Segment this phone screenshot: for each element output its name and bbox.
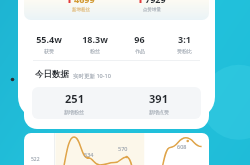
staticText: 18.3w bbox=[82, 33, 108, 45]
staticText: 今日数据 bbox=[35, 69, 69, 80]
button[interactable]: 391 bbox=[116, 91, 201, 115]
button[interactable]: Cursor bbox=[9, 76, 16, 83]
staticText: 作品 bbox=[135, 48, 145, 54]
staticText: 391 bbox=[149, 91, 168, 106]
staticText: 实时更新 10-10 bbox=[73, 72, 111, 80]
button[interactable]: 3:1 bbox=[162, 33, 207, 54]
staticText: 251 bbox=[65, 91, 84, 106]
button[interactable]: 55.4w bbox=[26, 33, 72, 54]
staticText: 赞粉比 bbox=[177, 48, 192, 54]
staticText: 粉丝 bbox=[90, 48, 100, 54]
staticText: 新增点赞 bbox=[149, 109, 169, 115]
button[interactable]: 251 bbox=[32, 91, 116, 115]
staticText: 7929 bbox=[145, 0, 166, 5]
staticText: 新增粉丝 bbox=[72, 7, 90, 13]
staticText: 点赞增量 bbox=[143, 7, 161, 13]
button[interactable]: 18.3w bbox=[72, 33, 117, 54]
button[interactable]: 96 bbox=[117, 33, 162, 54]
button[interactable]: 4699 bbox=[24, 0, 209, 20]
staticText: 4699 bbox=[74, 0, 95, 5]
staticText: 570 bbox=[118, 145, 128, 152]
staticText: 获赞 bbox=[44, 48, 54, 54]
staticText: 608 bbox=[177, 143, 187, 150]
button[interactable]: 522 bbox=[24, 133, 209, 165]
staticText: 534 bbox=[84, 151, 94, 158]
staticText: 96 bbox=[134, 33, 145, 45]
staticText: 55.4w bbox=[36, 33, 62, 45]
button[interactable]: 今日数据 bbox=[35, 69, 209, 80]
staticText: 3:1 bbox=[178, 33, 191, 45]
staticText: 522 bbox=[31, 156, 40, 163]
staticText: 新增粉丝 bbox=[64, 109, 84, 115]
